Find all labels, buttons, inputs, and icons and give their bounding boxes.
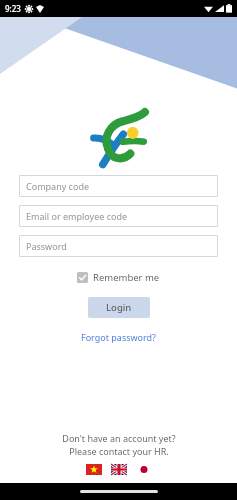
button[interactable]: Password — [19, 235, 218, 257]
button[interactable]: Login — [88, 297, 150, 318]
button[interactable]: Vietnamese — [86, 464, 102, 475]
button[interactable]: Japanese — [136, 464, 152, 475]
staticText: Forgot password? — [81, 331, 157, 343]
staticText: Login — [106, 301, 132, 314]
staticText: Company code — [26, 180, 90, 192]
staticText: Remember me — [93, 271, 160, 284]
button[interactable]: Remember me — [74, 269, 163, 286]
button[interactable]: Company code — [19, 175, 218, 197]
staticText: Don't have an account yet? — [62, 432, 176, 444]
button[interactable]: English — [111, 464, 127, 475]
staticText: Password — [26, 240, 67, 252]
button[interactable]: Email or employee code — [19, 205, 218, 227]
staticText: Please contact your HR. — [69, 445, 169, 457]
staticText: 9:23 — [5, 3, 21, 14]
button[interactable]: Forgot password? — [77, 329, 161, 345]
staticText: Email or employee code — [26, 210, 128, 222]
